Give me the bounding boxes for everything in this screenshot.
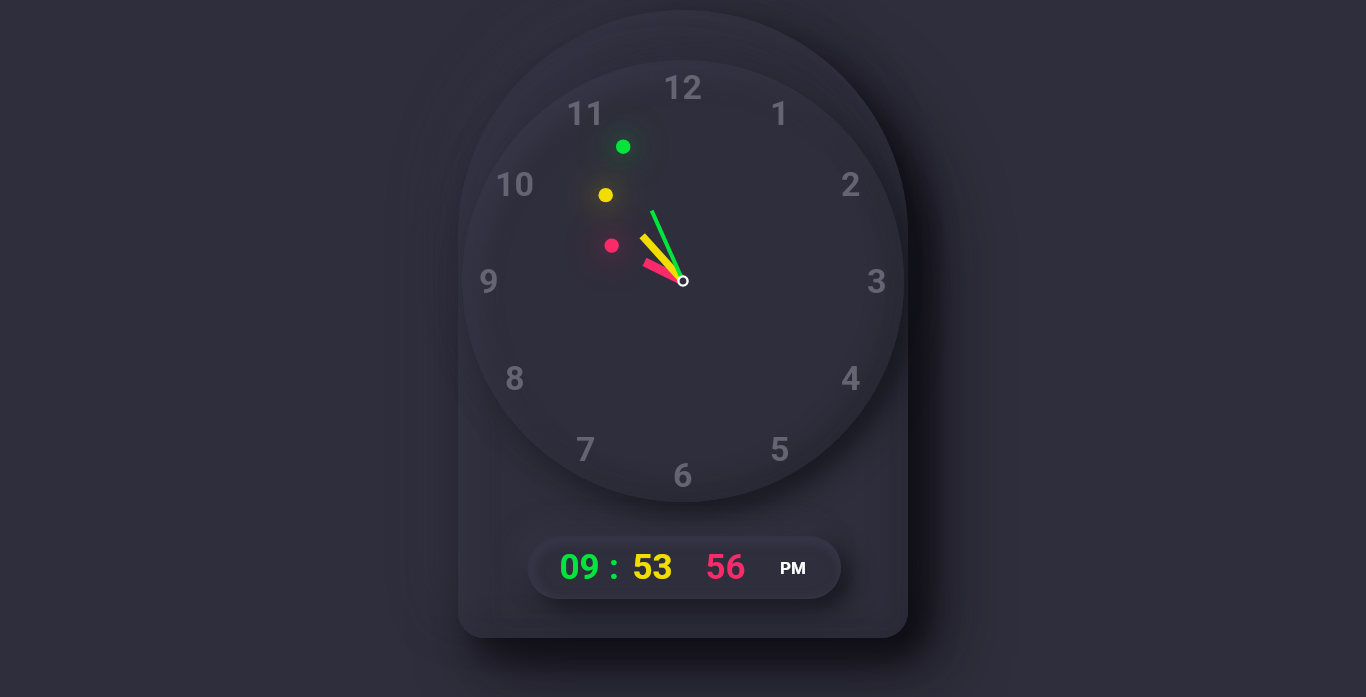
button[interactable]: Neumorphic analog clock xyxy=(0,0,1366,697)
